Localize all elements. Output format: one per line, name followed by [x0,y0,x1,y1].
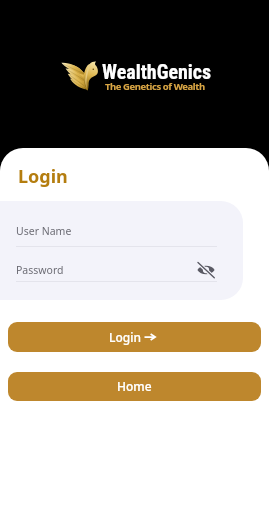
button[interactable]: Home [8,372,261,401]
staticText: The Genetics of Wealth [105,80,205,93]
staticText: Home [117,378,152,394]
staticText: Login [109,329,141,345]
staticText: Login [18,164,68,189]
staticText: WealthGenics [102,60,212,83]
button[interactable]: User Name [0,201,243,246]
staticText: User Name [16,224,72,238]
button[interactable]: Toggle password visibility [191,258,221,282]
staticText: Password [16,263,64,277]
button[interactable]: Password [0,247,243,281]
button[interactable]: Login [8,322,261,352]
